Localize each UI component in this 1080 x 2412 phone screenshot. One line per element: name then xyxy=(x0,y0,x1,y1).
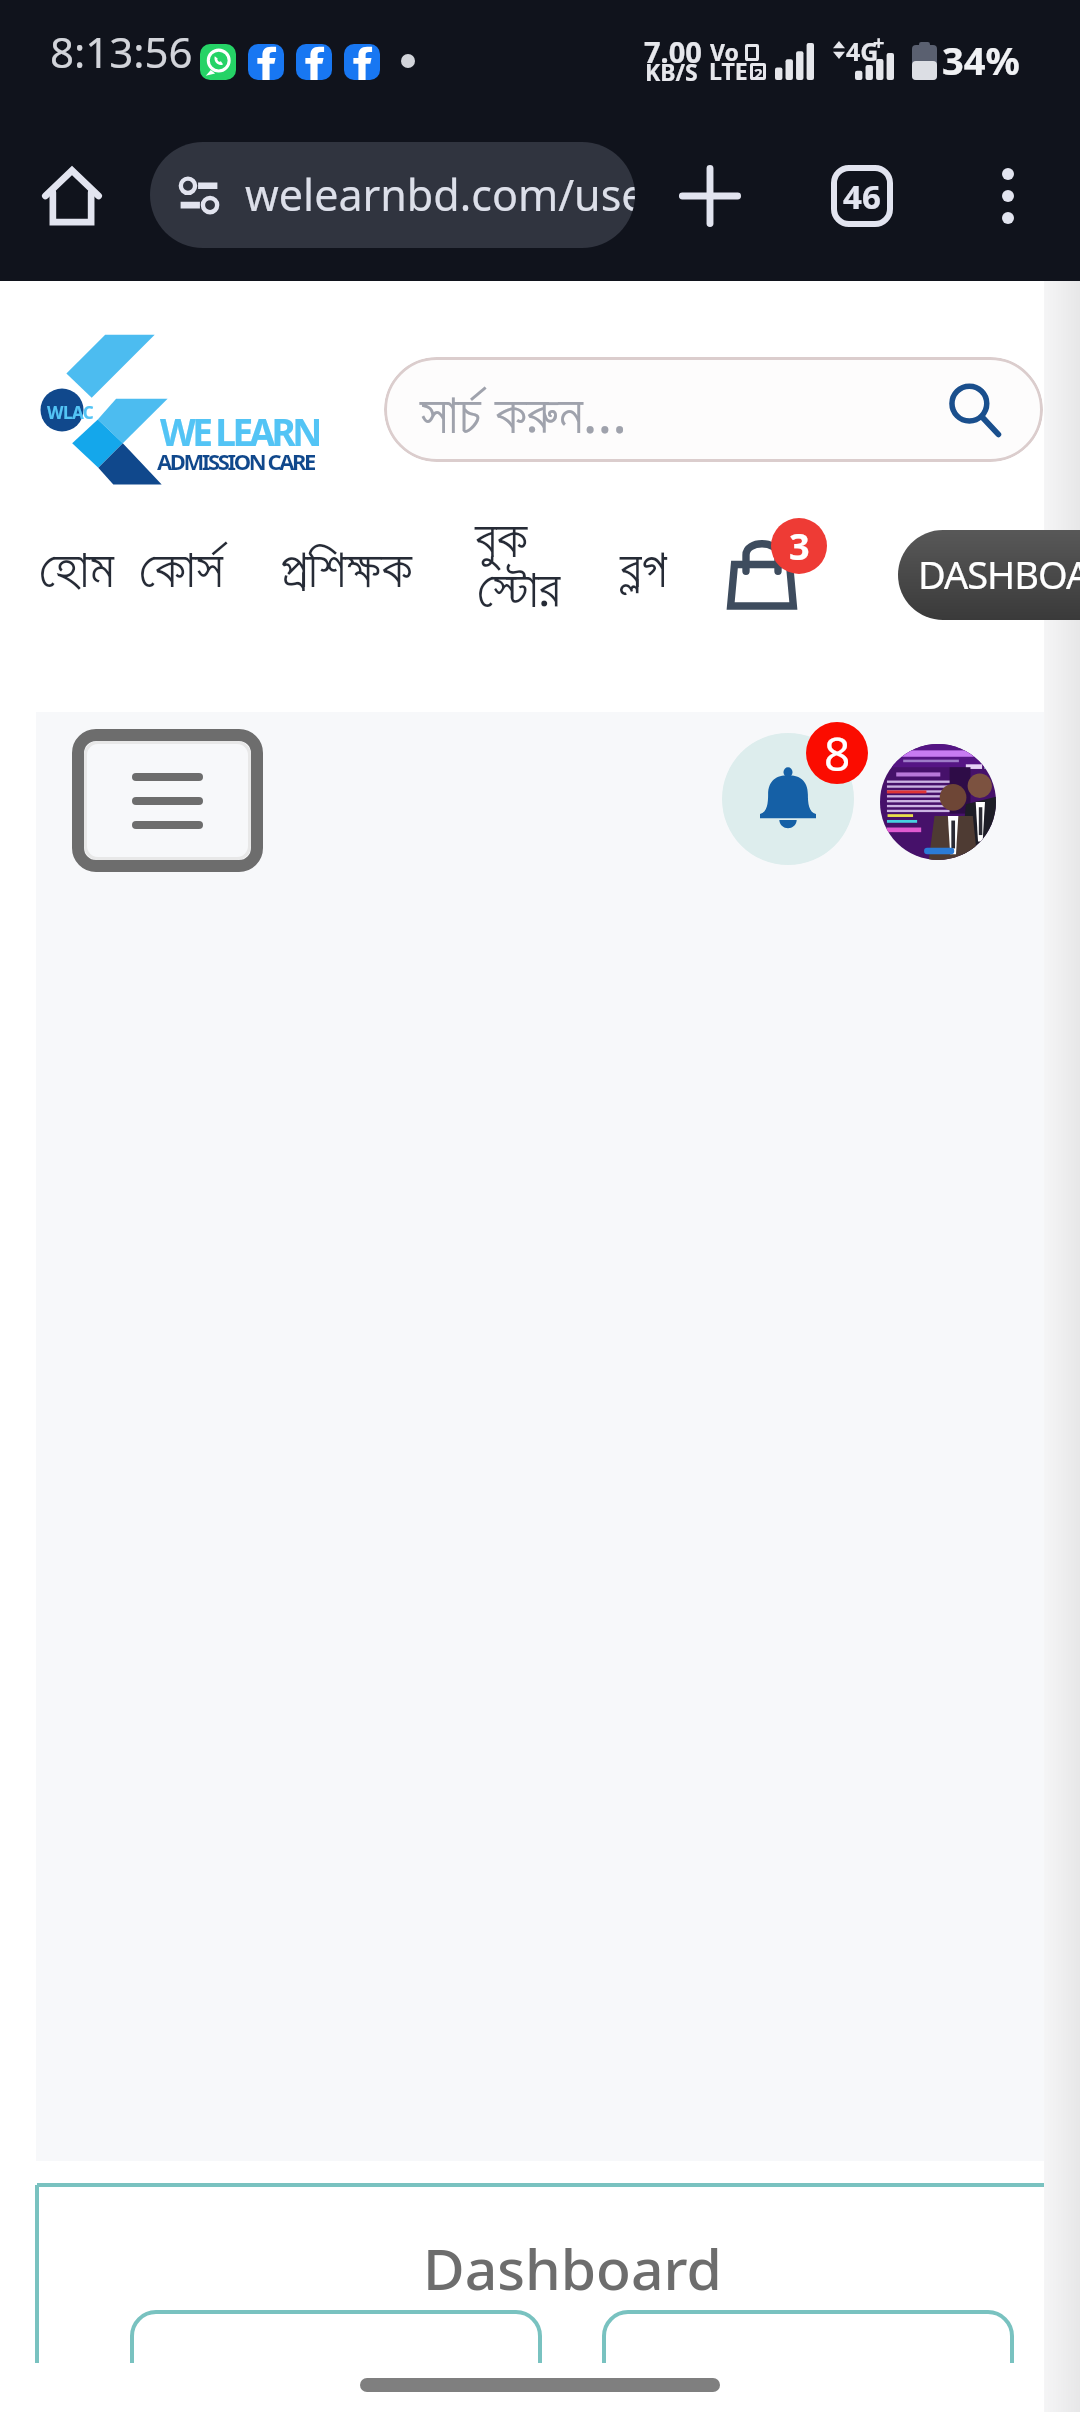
staticText: ব্লগ xyxy=(620,544,667,598)
staticText: 34% xyxy=(942,34,1020,86)
staticText: স্টোর xyxy=(477,564,561,618)
button[interactable]: ব্লগ xyxy=(620,544,667,598)
staticText: 8 xyxy=(824,722,851,784)
button[interactable]: সার্চ করুন... xyxy=(384,357,1043,462)
staticText: সার্চ করুন... xyxy=(420,374,628,449)
staticText: welearnbd.com/use xyxy=(245,165,635,224)
button[interactable]: More options xyxy=(970,158,1046,234)
staticText: Dashboard xyxy=(423,2229,722,2307)
button[interactable]: Tabs xyxy=(824,158,900,234)
button[interactable]: প্রশিক্ষক xyxy=(281,544,413,598)
button[interactable] xyxy=(602,2310,1014,2363)
button[interactable]: Cart xyxy=(730,540,794,608)
button[interactable]: Notifications xyxy=(722,733,854,865)
staticText: + xyxy=(873,29,885,56)
button[interactable]: হোম xyxy=(39,544,115,598)
staticText: প্রশিক্ষক xyxy=(281,544,413,598)
staticText: ADMISSION CARE xyxy=(157,446,314,476)
staticText: WLAC xyxy=(47,401,94,424)
staticText: হোম xyxy=(39,544,115,598)
staticText: 7.00 xyxy=(644,32,702,71)
staticText: WE LEARN xyxy=(160,406,319,456)
staticText: 46 xyxy=(843,174,881,219)
staticText: KB/S xyxy=(645,56,698,87)
staticText: 2 xyxy=(754,63,763,80)
button[interactable]: কোর্স xyxy=(139,544,223,598)
button[interactable]: welearnbd.com/use xyxy=(150,142,635,248)
staticText: কোর্স xyxy=(139,544,223,598)
button[interactable]: Home xyxy=(36,160,108,232)
button[interactable]: New tab xyxy=(672,158,748,234)
button[interactable]: Profile xyxy=(880,744,996,860)
button[interactable]: বুক xyxy=(475,514,559,568)
staticText: 4G xyxy=(846,34,879,68)
staticText: Vo xyxy=(710,36,739,67)
staticText: বুক xyxy=(475,514,528,568)
button[interactable]: Menu xyxy=(84,741,251,860)
button[interactable]: DASHBOARD xyxy=(898,530,1080,620)
staticText: LTE xyxy=(709,55,748,86)
staticText: 8:13:56 xyxy=(50,23,193,80)
staticText: 3 xyxy=(789,522,810,571)
staticText: DASHBOARD xyxy=(918,548,1080,600)
button[interactable] xyxy=(130,2310,542,2363)
